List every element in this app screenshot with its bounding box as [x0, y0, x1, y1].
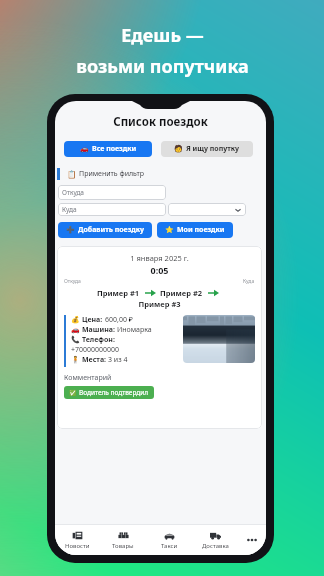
staticText: 1 января 2025 г. — [64, 253, 255, 263]
staticText: Комментарий — [64, 373, 112, 383]
staticText: Откуда — [64, 278, 81, 285]
staticText: Места: — [82, 355, 108, 365]
button[interactable]: Новости — [55, 525, 100, 555]
button[interactable]: ✅ — [64, 386, 154, 399]
button[interactable]: 🧑 — [161, 141, 253, 157]
staticText: Едешь — — [121, 23, 204, 48]
button[interactable]: Доставка — [192, 525, 238, 555]
staticText: Куда — [243, 278, 255, 285]
staticText: 🚗 — [71, 326, 80, 334]
staticText: Добавить поездку — [78, 225, 145, 235]
button[interactable]: Товары — [100, 525, 146, 555]
staticText: ➕ — [66, 226, 75, 234]
staticText: Список поездок — [55, 114, 266, 130]
staticText: Машина: — [82, 325, 117, 335]
button[interactable]: Куда — [58, 203, 166, 216]
staticText: 🚗 — [80, 145, 89, 153]
staticText: 600,00 ₽ — [105, 315, 133, 325]
staticText: Доставка — [202, 542, 229, 550]
staticText: Применить фильтр — [79, 169, 145, 179]
staticText: 🧑 — [174, 145, 183, 153]
staticText: Откуда — [62, 188, 84, 197]
staticText: Такси — [161, 542, 178, 550]
staticText: Телефон: — [82, 335, 117, 345]
staticText: Куда — [62, 205, 77, 214]
staticText: ✅ — [69, 389, 77, 396]
staticText: возьми попутчика — [76, 54, 249, 79]
button[interactable]: ➕ — [58, 222, 152, 238]
button[interactable]: Откуда — [58, 185, 166, 200]
staticText: Я ищу попутку — [186, 144, 240, 154]
button[interactable]: More — [238, 525, 266, 555]
staticText: Товары — [112, 542, 134, 550]
button[interactable]: 🚗 — [64, 141, 152, 157]
staticText: 🧍 — [71, 356, 80, 364]
staticText: Пример #3 — [64, 299, 255, 309]
staticText: Водитель подтвердил — [79, 388, 149, 397]
staticText: Пример #1 — [97, 288, 140, 298]
staticText: 3 из 4 — [108, 355, 128, 365]
staticText: Пример #2 — [160, 288, 203, 298]
staticText: Мои поездки — [177, 225, 225, 235]
staticText: Новости — [65, 542, 90, 550]
button[interactable]: Select type — [168, 203, 246, 216]
staticText: Цена: — [82, 315, 105, 325]
staticText: ⭐ — [165, 226, 174, 234]
staticText: 📋 — [67, 170, 77, 179]
button[interactable]: ⭐ — [157, 222, 233, 238]
button[interactable]: 1 января 2025 г. — [57, 246, 262, 429]
staticText: 0:05 — [64, 264, 255, 276]
staticText: 📞 — [71, 336, 80, 344]
staticText: Все поездки — [92, 144, 137, 154]
staticText: Иномарка — [117, 325, 152, 335]
button[interactable]: Такси — [146, 525, 192, 555]
staticText: 💰 — [71, 316, 80, 324]
staticText: +70000000000 — [71, 345, 120, 355]
